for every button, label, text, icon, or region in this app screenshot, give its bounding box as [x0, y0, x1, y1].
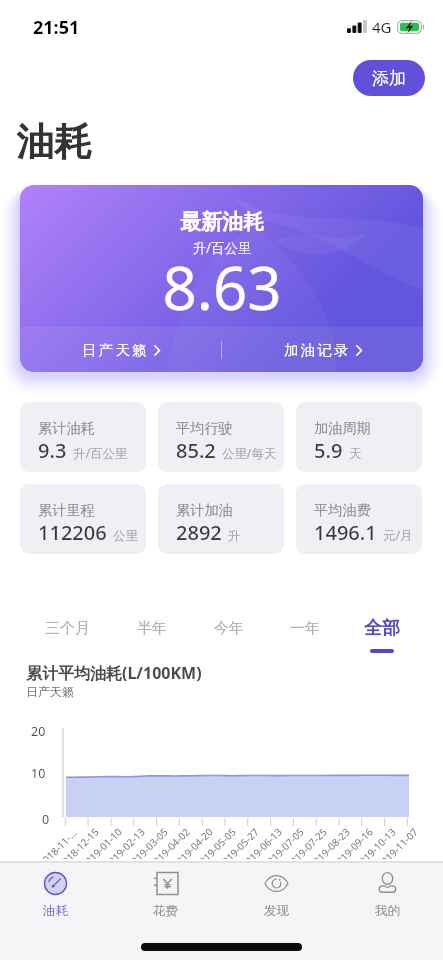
button[interactable]: 平均油费: [296, 484, 422, 554]
staticText: 2018-11-...: [35, 826, 80, 859]
staticText: 8.63: [162, 246, 282, 328]
staticText: 4G: [372, 17, 392, 37]
staticText: 2019-07-05: [260, 826, 307, 859]
button[interactable]: 花费: [110, 862, 221, 932]
staticText: 油耗: [16, 118, 92, 166]
staticText: 2019-05-05: [192, 826, 239, 859]
staticText: 元/月: [383, 527, 413, 544]
staticText: 平均油费: [314, 501, 371, 519]
staticText: 2019-08-23: [306, 826, 353, 859]
staticText: 2019-11-07: [374, 826, 421, 859]
button[interactable]: 一年: [267, 614, 343, 656]
staticText: 三个月: [45, 619, 90, 638]
staticText: 21:51: [33, 15, 80, 40]
staticText: 2019-10-13: [352, 826, 399, 859]
staticText: 升/百公里: [73, 445, 128, 462]
staticText: 2019-06-13: [238, 826, 285, 859]
staticText: 2019-02-13: [101, 826, 148, 859]
staticText: 平均行驶: [176, 419, 233, 437]
button[interactable]: 油耗: [0, 862, 110, 932]
staticText: 2018-12-15: [55, 826, 102, 859]
button[interactable]: 日产天籁: [20, 327, 221, 372]
staticText: 半年: [137, 619, 167, 638]
staticText: 升: [228, 528, 241, 544]
staticText: 1496.1: [314, 519, 377, 546]
button[interactable]: 累计油耗: [20, 402, 146, 472]
staticText: 我的: [375, 903, 400, 919]
staticText: 最新油耗: [180, 209, 264, 235]
staticText: 日产天籁: [26, 684, 74, 699]
staticText: 累计油耗: [38, 419, 95, 437]
button[interactable]: 累计里程: [20, 484, 146, 554]
staticText: 累计平均油耗(L/100KM): [26, 662, 202, 684]
staticText: 9.3: [38, 437, 67, 464]
staticText: 2019-04-02: [146, 826, 193, 859]
staticText: 2892: [176, 519, 222, 546]
button[interactable]: 加油记录: [222, 327, 423, 372]
staticText: 累计里程: [38, 501, 95, 519]
staticText: 加油记录: [284, 341, 351, 359]
staticText: 0: [42, 811, 50, 828]
staticText: 2019-05-27: [215, 826, 262, 859]
staticText: 20: [31, 723, 46, 740]
staticText: 一年: [290, 619, 320, 638]
staticText: 累计加油: [176, 501, 233, 519]
button[interactable]: 最新油耗: [20, 185, 423, 372]
staticText: 加油周期: [314, 419, 371, 437]
staticText: 2019-04-20: [169, 826, 216, 859]
staticText: 天: [349, 446, 362, 462]
staticText: 日产天籁: [82, 341, 149, 359]
staticText: 公里/每天: [222, 445, 277, 462]
button[interactable]: 今年: [191, 614, 267, 656]
staticText: 85.2: [176, 437, 216, 464]
staticText: 2019-09-16: [329, 826, 376, 859]
button[interactable]: 添加: [353, 60, 425, 96]
staticText: 花费: [153, 903, 178, 919]
staticText: 今年: [214, 619, 244, 638]
button[interactable]: 发现: [221, 862, 332, 932]
button[interactable]: 全部: [344, 614, 420, 656]
staticText: 2019-01-10: [78, 826, 125, 859]
staticText: 油耗: [43, 903, 68, 919]
button[interactable]: 半年: [114, 614, 190, 656]
staticText: 发现: [264, 903, 289, 919]
button[interactable]: 我的: [332, 862, 443, 932]
staticText: 2019-03-05: [124, 826, 171, 859]
button[interactable]: 平均行驶: [158, 402, 284, 472]
staticText: 添加: [372, 68, 406, 89]
staticText: 10: [31, 765, 46, 782]
button[interactable]: 三个月: [29, 614, 105, 656]
button[interactable]: 加油周期: [296, 402, 422, 472]
staticText: 公里: [113, 528, 138, 544]
button[interactable]: 累计加油: [158, 484, 284, 554]
staticText: 升/百公里: [192, 239, 252, 257]
staticText: 2019-07-25: [283, 826, 330, 859]
staticText: 5.9: [314, 437, 343, 464]
staticText: 全部: [364, 617, 400, 640]
staticText: 112206: [38, 519, 107, 546]
